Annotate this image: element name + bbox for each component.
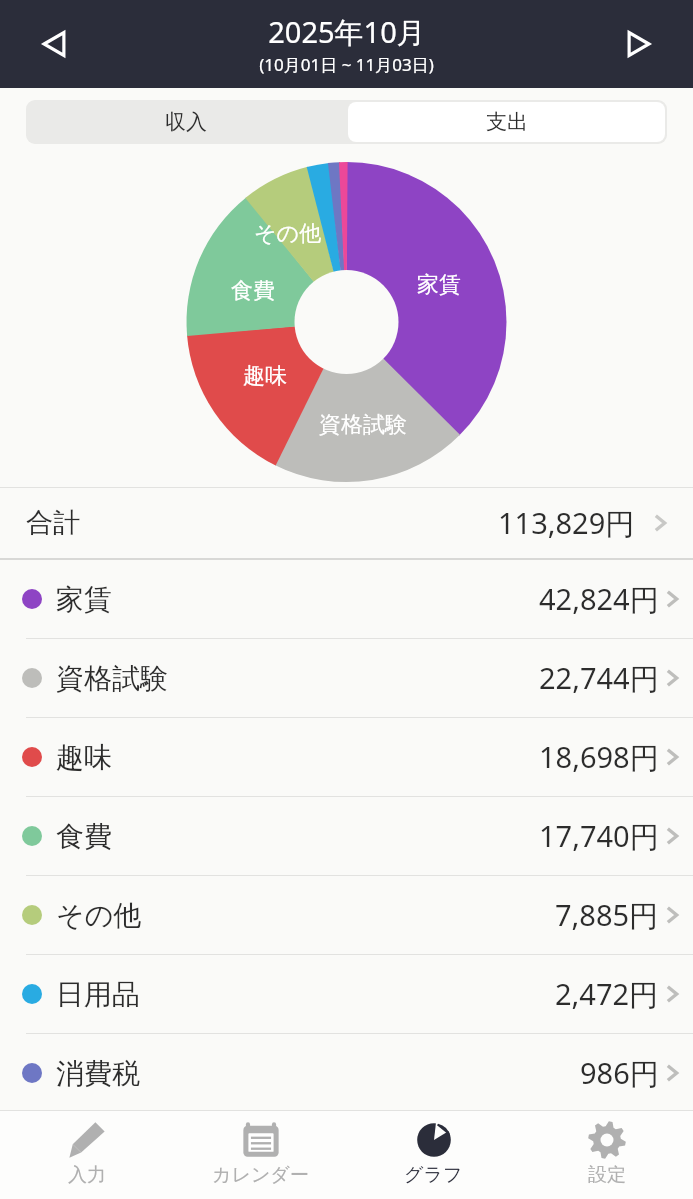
staticText: 家賃: [417, 271, 461, 299]
button[interactable]: 収入: [26, 100, 346, 144]
staticText: 42,824円: [539, 579, 659, 619]
staticText: 収入: [165, 109, 207, 135]
staticText: 趣味: [243, 362, 287, 390]
staticText: 消費税: [56, 1056, 140, 1091]
staticText: グラフ: [404, 1163, 463, 1187]
button[interactable]: 資格試験: [0, 639, 693, 717]
staticText: 18,698円: [539, 737, 659, 777]
staticText: その他: [254, 220, 322, 248]
button[interactable]: グラフ: [347, 1111, 520, 1199]
staticText: 家賃: [56, 582, 112, 617]
staticText: 入力: [68, 1163, 106, 1187]
button[interactable]: 支出: [348, 102, 665, 142]
staticText: 合計: [26, 506, 80, 540]
button[interactable]: 合計: [0, 488, 693, 558]
staticText: 食費: [231, 277, 275, 305]
button[interactable]: 食費: [0, 797, 693, 875]
staticText: 食費: [56, 819, 112, 854]
button[interactable]: 入力: [0, 1111, 174, 1199]
button[interactable]: その他: [0, 876, 693, 954]
staticText: 17,740円: [539, 816, 659, 856]
staticText: 2,472円: [555, 974, 659, 1014]
staticText: 設定: [588, 1163, 626, 1187]
staticText: 日用品: [56, 977, 140, 1012]
button[interactable]: Next month: [611, 16, 667, 72]
staticText: その他: [56, 898, 142, 933]
staticText: 資格試験: [319, 411, 407, 439]
button[interactable]: 日用品: [0, 955, 693, 1033]
staticText: 2025年10月: [268, 12, 426, 52]
button[interactable]: Previous month: [26, 16, 82, 72]
staticText: 趣味: [56, 740, 112, 775]
button[interactable]: 家賃: [0, 560, 693, 638]
staticText: 資格試験: [56, 661, 168, 696]
staticText: カレンダー: [212, 1163, 309, 1187]
button[interactable]: カレンダー: [174, 1111, 347, 1199]
staticText: (10月01日 ~ 11月03日): [259, 53, 434, 76]
staticText: 113,829円: [498, 503, 635, 543]
button[interactable]: 趣味: [0, 718, 693, 796]
staticText: 986円: [580, 1053, 659, 1093]
staticText: 22,744円: [539, 658, 659, 698]
staticText: 支出: [486, 109, 528, 135]
button[interactable]: 設定: [520, 1111, 693, 1199]
staticText: 7,885円: [555, 895, 659, 935]
button[interactable]: 消費税: [0, 1034, 693, 1112]
